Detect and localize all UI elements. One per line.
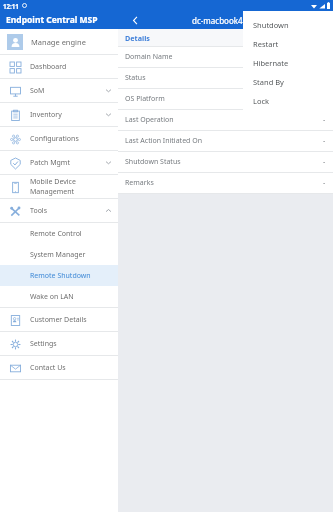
button[interactable]: Last Action Initiated On [118, 131, 333, 151]
staticText: Tools [30, 206, 105, 216]
button[interactable]: Restart [243, 34, 333, 53]
button[interactable]: Remarks [118, 173, 333, 193]
staticText: Shutdown Status [125, 157, 323, 167]
button[interactable]: Tools [0, 199, 118, 222]
staticText: Stand By [253, 77, 284, 87]
button[interactable]: Lock [243, 91, 333, 110]
staticText: Lock [253, 96, 270, 106]
button[interactable]: Contact Us [0, 356, 118, 379]
staticText: Remote Control [30, 229, 112, 239]
staticText: System Manager [30, 250, 112, 260]
staticText: Customer Details [30, 315, 112, 325]
button[interactable]: Customer Details [0, 308, 118, 331]
button[interactable]: Back [126, 11, 144, 29]
button[interactable]: System Manager [0, 244, 118, 265]
staticText: Inventory [30, 110, 105, 120]
staticText: Settings [30, 339, 112, 349]
staticText: Manage engine [31, 37, 86, 47]
staticText: Wake on LAN [30, 292, 112, 302]
staticText: Last Action Initiated On [125, 136, 323, 146]
staticText: OS Platform [125, 94, 323, 104]
staticText: Restart [253, 39, 279, 49]
button[interactable]: Settings [0, 332, 118, 355]
button[interactable]: Details [118, 29, 333, 46]
staticText: Patch Mgmt [30, 158, 105, 168]
button[interactable]: Dashboard [0, 55, 118, 78]
staticText: Contact Us [30, 363, 112, 373]
button[interactable]: Inventory [0, 103, 118, 126]
staticText: Remarks [125, 178, 323, 188]
button[interactable]: Wake on LAN [0, 286, 118, 307]
staticText: SoM [30, 86, 105, 96]
button[interactable]: Mobile Device Management [0, 175, 118, 198]
staticText: - [323, 157, 326, 167]
staticText: Endpoint Central MSP [6, 14, 98, 26]
staticText: 12:11 [3, 2, 19, 10]
button[interactable]: Status [118, 68, 333, 88]
staticText: Status [125, 73, 323, 83]
button[interactable]: Domain Name [118, 47, 333, 67]
button[interactable]: Stand By [243, 72, 333, 91]
staticText: Last Operation [125, 115, 323, 125]
staticText: Domain Name [125, 52, 323, 62]
button[interactable]: Shutdown [243, 15, 333, 34]
staticText: Mobile Device Management [30, 177, 112, 197]
button[interactable]: Hibernate [243, 53, 333, 72]
staticText: dc-macbook4 [192, 15, 243, 26]
button[interactable]: Remote Shutdown [0, 265, 118, 286]
staticText: - [323, 178, 326, 188]
staticText: Shutdown [253, 20, 289, 30]
staticText: Hibernate [253, 58, 289, 68]
staticText: - [323, 136, 326, 146]
staticText: Remote Shutdown [30, 271, 112, 281]
staticText: - [323, 115, 326, 125]
button[interactable]: SoM [0, 79, 118, 102]
staticText: Dashboard [30, 62, 112, 72]
button[interactable]: Patch Mgmt [0, 151, 118, 174]
staticText: Configurations [30, 134, 112, 144]
button[interactable]: Manage engine [0, 29, 118, 54]
staticText: Details [125, 33, 150, 43]
button[interactable]: Shutdown Status [118, 152, 333, 172]
button[interactable]: Remote Control [0, 223, 118, 244]
button[interactable]: Last Operation [118, 110, 333, 130]
button[interactable]: OS Platform [118, 89, 333, 109]
button[interactable]: Configurations [0, 127, 118, 150]
